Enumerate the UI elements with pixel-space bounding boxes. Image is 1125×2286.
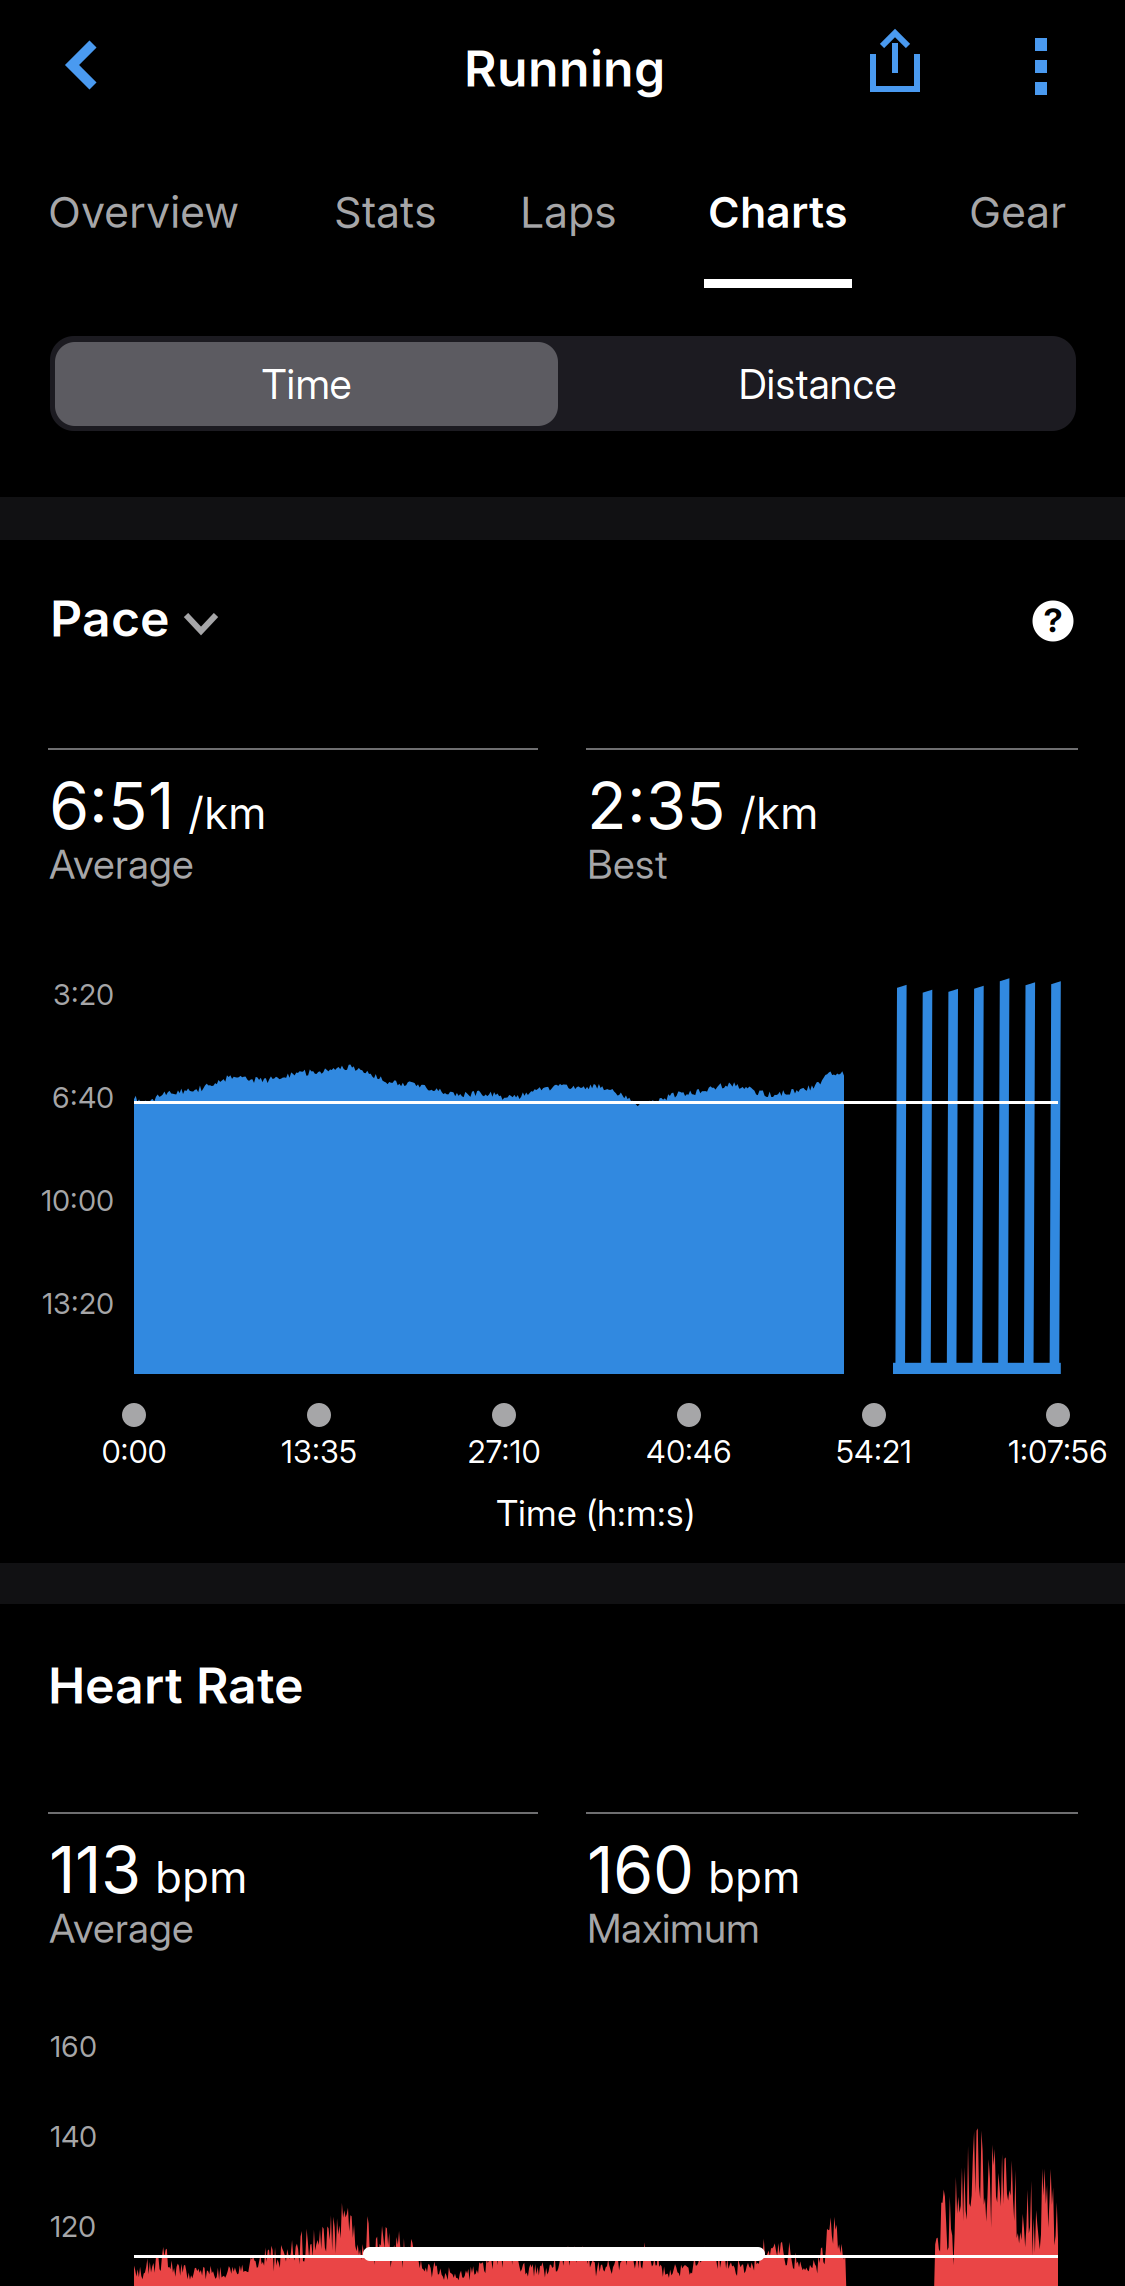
staticText: Charts [708, 186, 848, 238]
staticText: 1:07:56 [1008, 1433, 1108, 1470]
staticText: Gear [969, 186, 1066, 238]
staticText: Time (h:m:s) [496, 1491, 695, 1535]
staticText: Heart Rate [48, 1655, 304, 1715]
staticText: 0:00 [101, 1433, 166, 1470]
staticText: 10:00 [41, 1183, 114, 1218]
button[interactable]: Laps [498, 162, 638, 292]
button[interactable]: Stats [312, 162, 459, 292]
staticText: 13:35 [281, 1433, 357, 1470]
button[interactable]: Charts [686, 162, 872, 292]
button[interactable]: Back [22, 16, 134, 116]
staticText: 13:20 [42, 1286, 114, 1321]
button[interactable]: More options [988, 12, 1096, 120]
staticText: 6:40 [52, 1080, 114, 1115]
button[interactable]: Gear [947, 162, 1082, 292]
staticText: 2:35 [587, 766, 726, 845]
button[interactable]: Distance [566, 342, 1069, 426]
staticText: Average [49, 1904, 194, 1952]
button[interactable]: Help [1012, 580, 1094, 662]
button[interactable]: Share [836, 12, 952, 120]
staticText: 54:21 [836, 1433, 912, 1470]
staticText: /km [188, 786, 267, 839]
staticText: Overview [48, 186, 239, 238]
staticText: 40:46 [646, 1433, 732, 1470]
staticText: Distance [738, 359, 896, 409]
staticText: 3:20 [53, 977, 114, 1012]
staticText: ? [1043, 599, 1062, 640]
staticText: 120 [50, 2209, 96, 2244]
button[interactable]: Overview [26, 162, 258, 292]
staticText: Stats [334, 186, 437, 238]
button[interactable]: Time [55, 342, 558, 426]
staticText: /km [740, 786, 819, 839]
staticText: 113 [49, 1830, 141, 1909]
staticText: bpm [155, 1850, 248, 1903]
staticText: Running [464, 38, 665, 98]
staticText: 6:51 [49, 766, 174, 845]
staticText: 160 [587, 1830, 694, 1909]
staticText: Best [587, 840, 668, 888]
button[interactable]: Pace [40, 588, 250, 658]
staticText: Laps [520, 186, 617, 238]
staticText: bpm [708, 1850, 801, 1903]
staticText: Average [49, 840, 194, 888]
staticText: 27:10 [467, 1433, 540, 1470]
staticText: Time [261, 359, 351, 409]
staticText: 140 [50, 2119, 97, 2154]
staticText: Pace [50, 588, 170, 648]
staticText: Maximum [587, 1904, 760, 1952]
staticText: 160 [50, 2029, 97, 2064]
